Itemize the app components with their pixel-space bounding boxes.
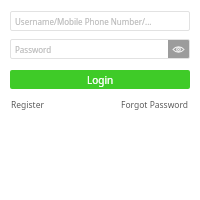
button[interactable]: Show password [168, 40, 189, 58]
button[interactable]: Register [10, 98, 45, 112]
staticText: Login [87, 73, 114, 87]
button[interactable]: Password [10, 39, 190, 59]
button[interactable]: Login [10, 70, 190, 89]
button[interactable]: Username/Mobile Phone Number/... [10, 11, 190, 31]
button[interactable]: Forgot Password [120, 98, 190, 112]
staticText: Password [15, 44, 52, 55]
staticText: Register [11, 99, 44, 111]
staticText: Forgot Password [121, 99, 189, 111]
staticText: Username/Mobile Phone Number/... [15, 16, 152, 27]
